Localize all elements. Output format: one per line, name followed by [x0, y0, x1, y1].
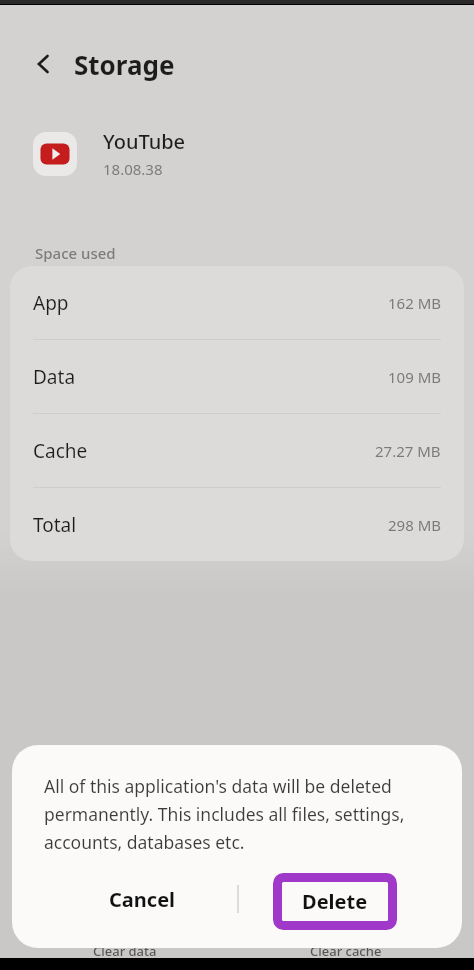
- staticText: 18.08.38: [103, 159, 163, 179]
- staticText: App: [33, 290, 69, 316]
- staticText: Space used: [35, 243, 116, 263]
- staticText: Delete: [302, 888, 368, 915]
- staticText: 162 MB: [388, 293, 441, 313]
- staticText: 109 MB: [388, 367, 441, 387]
- button[interactable]: Cache: [10, 414, 464, 488]
- staticText: 298 MB: [388, 515, 441, 535]
- button[interactable]: Total: [10, 488, 464, 561]
- button[interactable]: Clear cache: [298, 938, 394, 964]
- button[interactable]: Cancel: [67, 873, 217, 925]
- staticText: Clear cache: [310, 942, 382, 960]
- staticText: Total: [33, 512, 77, 538]
- staticText: Storage: [74, 47, 175, 82]
- staticText: 27.27 MB: [375, 441, 441, 461]
- staticText: Clear data: [93, 942, 157, 960]
- button[interactable]: Clear data: [80, 938, 170, 964]
- staticText: Data: [33, 364, 76, 390]
- button[interactable]: App: [10, 266, 464, 340]
- button[interactable]: Delete: [273, 873, 397, 930]
- staticText: Cancel: [109, 886, 176, 913]
- staticText: Cache: [33, 438, 88, 464]
- staticText: All of this application's data will be d…: [44, 774, 405, 854]
- staticText: YouTube: [103, 128, 186, 155]
- button[interactable]: [24, 44, 64, 84]
- button[interactable]: Data: [10, 340, 464, 414]
